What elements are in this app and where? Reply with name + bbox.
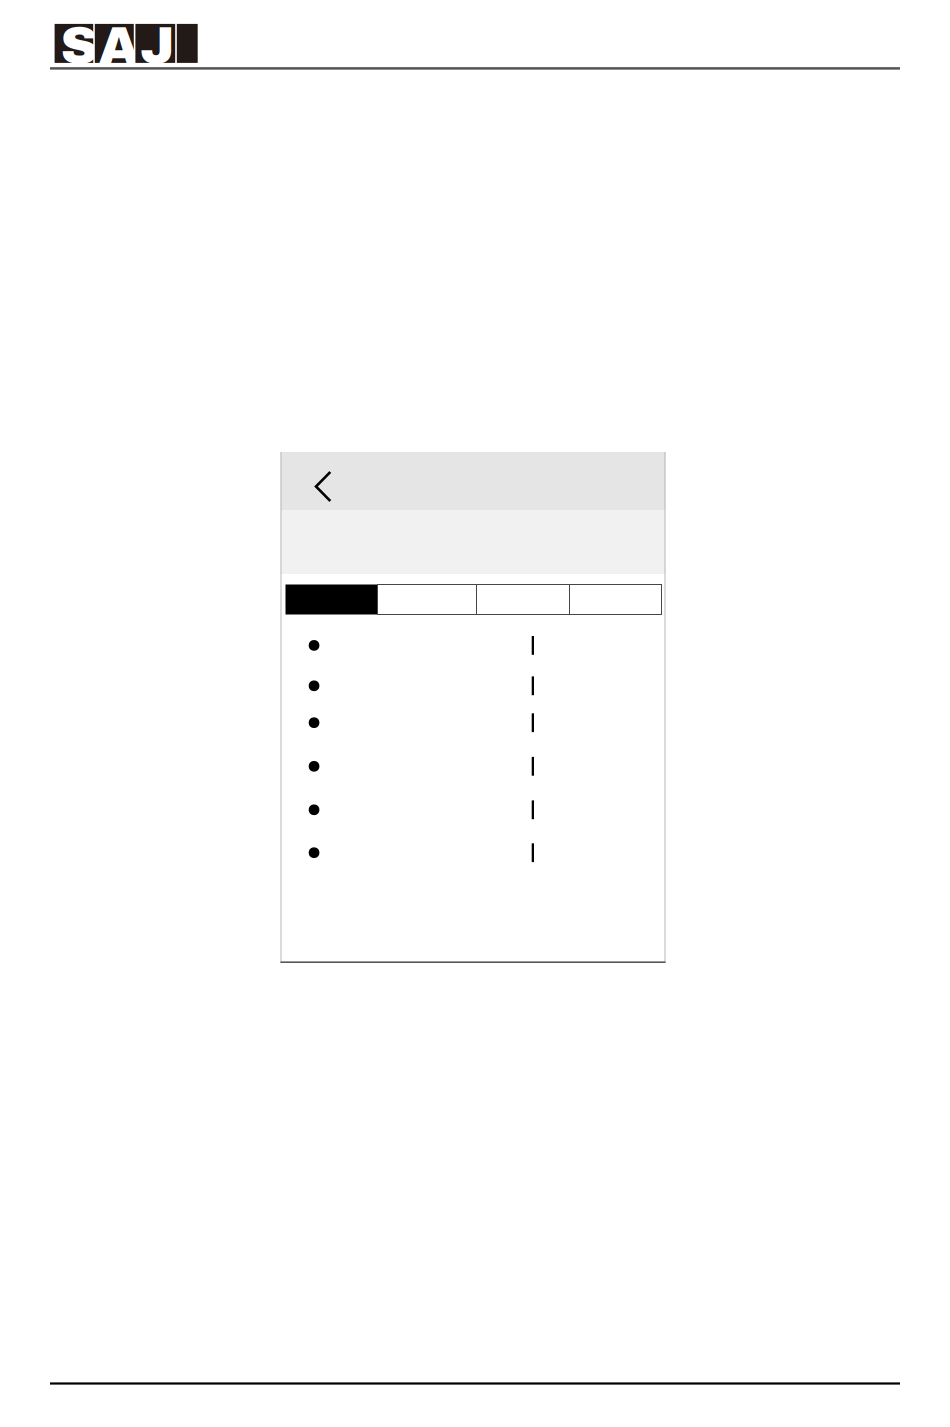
button[interactable]: List item <box>280 800 665 819</box>
button[interactable]: List item <box>280 757 665 776</box>
button[interactable]: List item <box>280 676 665 695</box>
staticText: A <box>99 18 139 74</box>
button[interactable]: List item <box>280 713 665 732</box>
button[interactable]: Tab one, selected <box>285 584 377 614</box>
staticText: S <box>60 18 98 74</box>
button[interactable]: Tab four <box>569 584 661 614</box>
button[interactable]: Back <box>280 452 665 510</box>
button[interactable]: Tab two <box>377 584 476 614</box>
button[interactable]: List item <box>280 843 665 862</box>
button[interactable]: List item <box>280 636 665 655</box>
staticText: J <box>140 18 175 74</box>
button[interactable]: Tab three <box>476 584 569 614</box>
